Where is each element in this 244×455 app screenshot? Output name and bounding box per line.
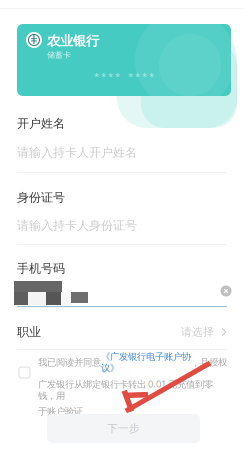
- button[interactable]: Agree to the account terms: [19, 367, 30, 378]
- staticText: 请输入持卡人开户姓名: [17, 145, 137, 160]
- staticText: 请输入持卡人身份证号: [17, 218, 137, 233]
- staticText: 请选择: [181, 325, 214, 338]
- staticText: 我已阅读并同意: [38, 357, 101, 368]
- staticText: ，且授权: [191, 357, 227, 368]
- staticText: 身份证号: [17, 190, 65, 205]
- button[interactable]: 下一步: [47, 414, 200, 443]
- staticText: 储蓄卡: [47, 50, 71, 60]
- staticText: 下一步: [107, 422, 140, 435]
- staticText: 手机号码: [17, 261, 65, 276]
- staticText: 职业: [17, 325, 41, 339]
- staticText: 《广发银行电子账户协议》: [101, 351, 191, 374]
- staticText: 于账户验证: [38, 406, 83, 417]
- staticText: 广发银行从绑定银行卡转出 0.01 元充值到零钱，用: [38, 378, 213, 402]
- button[interactable]: 职业: [0, 320, 244, 344]
- staticText: 开户姓名: [17, 116, 65, 131]
- staticText: 农业银行: [47, 33, 99, 49]
- button[interactable]: Clear phone number: [220, 285, 232, 297]
- staticText: * * * * * * * *: [94, 70, 154, 83]
